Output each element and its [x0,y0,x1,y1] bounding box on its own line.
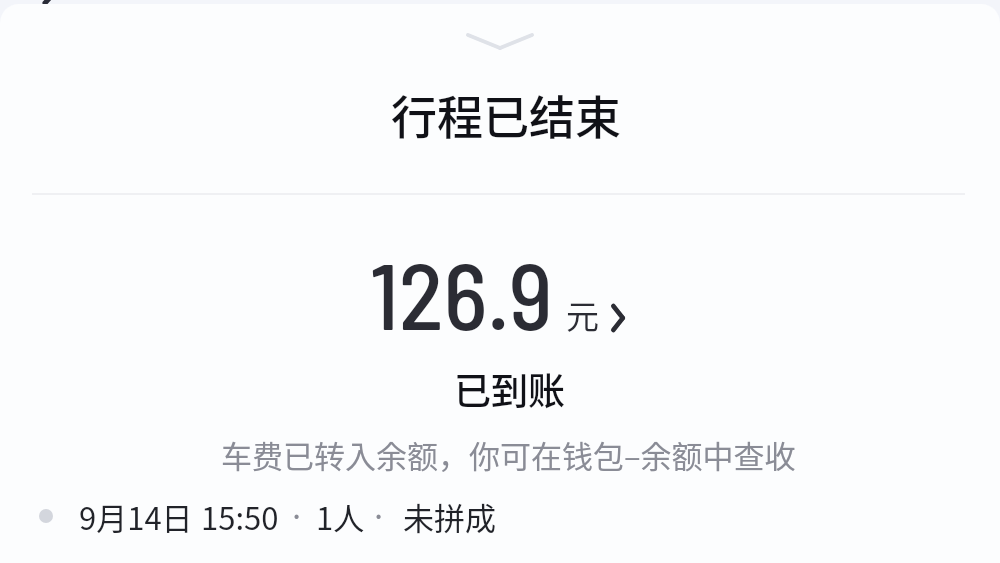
button[interactable]: Collapse sheet [450,23,550,57]
staticText: 9月14日 [79,494,193,539]
staticText: 已到账 [454,362,565,416]
staticText: 行程已结束 [391,81,621,148]
staticText: 元 [566,291,599,339]
staticText: · [370,492,388,537]
button[interactable]: 9月14日 [20,492,520,550]
staticText: 未拼成 [403,494,496,539]
staticText: · [288,492,306,537]
staticText: 15:50 [201,494,279,539]
staticText: 1人 [316,494,365,539]
staticText: 车费已转入余额，你可在钱包–余额中查收 [221,432,796,477]
staticText: 126.9 [370,237,553,349]
button[interactable]: 126.9 [370,237,627,349]
